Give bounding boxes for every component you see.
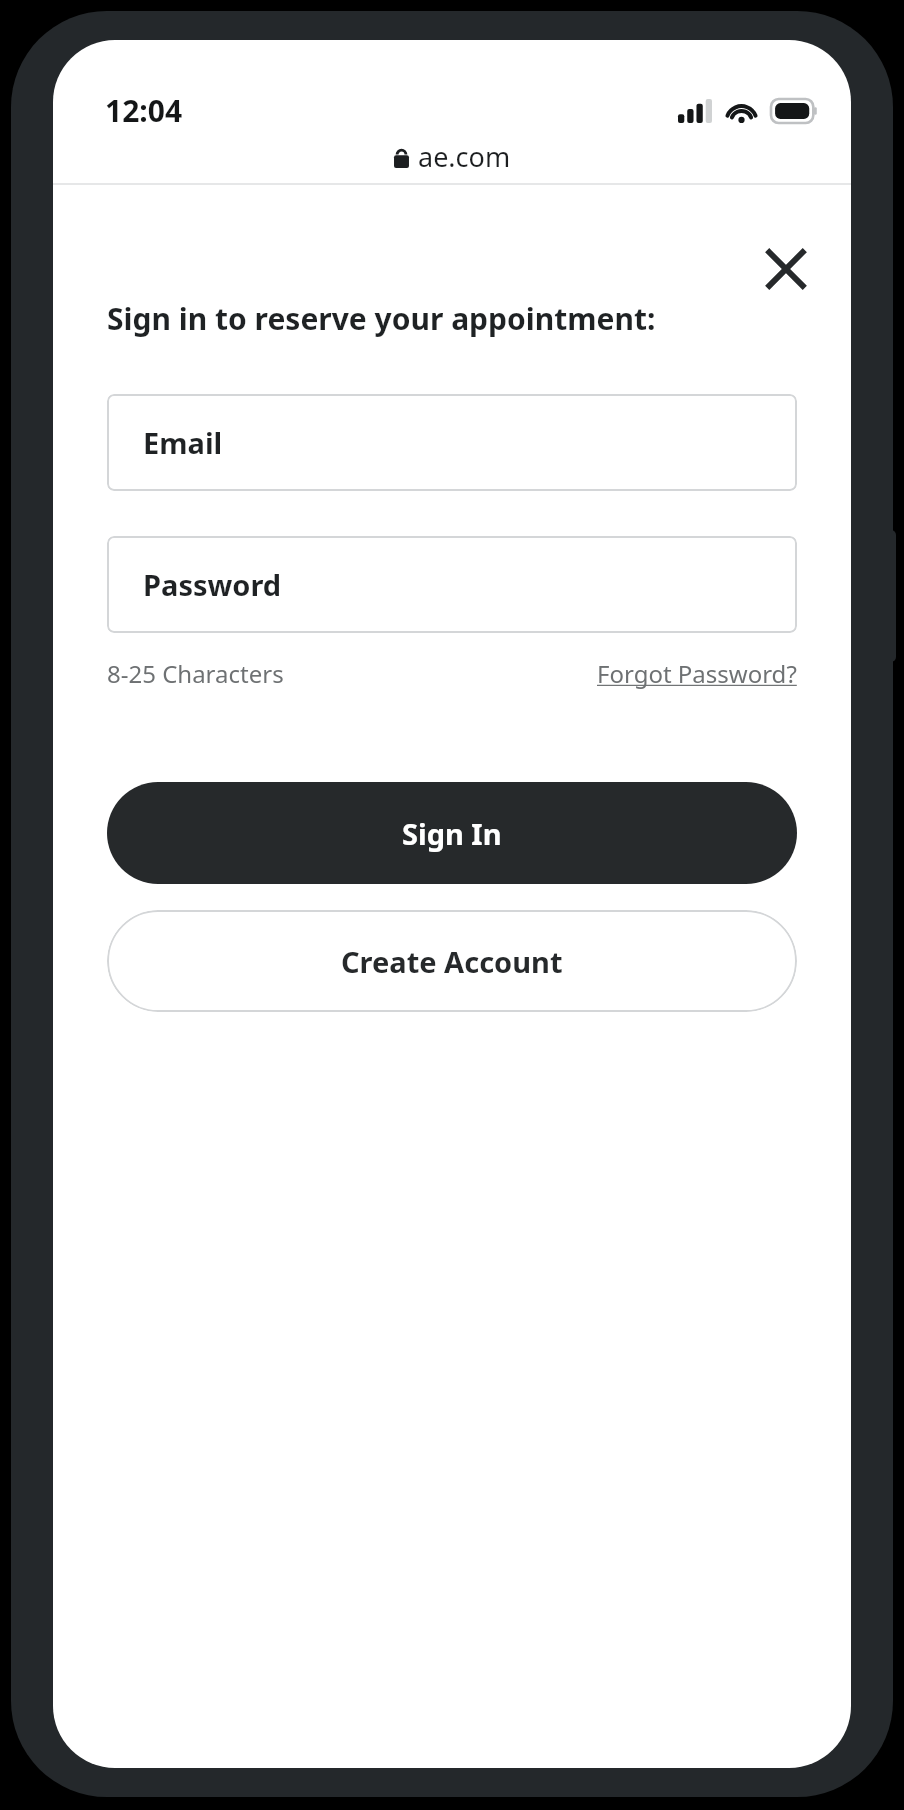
button[interactable]: Password — [107, 536, 797, 633]
staticText: Sign in to reserve your appointment: — [107, 298, 656, 339]
button[interactable]: Create Account — [107, 910, 797, 1012]
button[interactable]: Close — [743, 226, 829, 312]
button[interactable]: Forgot Password? — [597, 657, 797, 690]
staticText: Forgot Password? — [597, 657, 797, 690]
staticText: Create Account — [341, 942, 563, 981]
button[interactable]: Sign In — [107, 782, 797, 884]
staticText: Email — [143, 423, 223, 462]
staticText: ae.com — [418, 138, 511, 175]
staticText: Password — [143, 565, 282, 604]
button[interactable]: Email — [107, 394, 797, 491]
staticText: 8-25 Characters — [107, 657, 284, 690]
staticText: 12:04 — [105, 90, 183, 131]
staticText: Sign In — [402, 814, 502, 853]
